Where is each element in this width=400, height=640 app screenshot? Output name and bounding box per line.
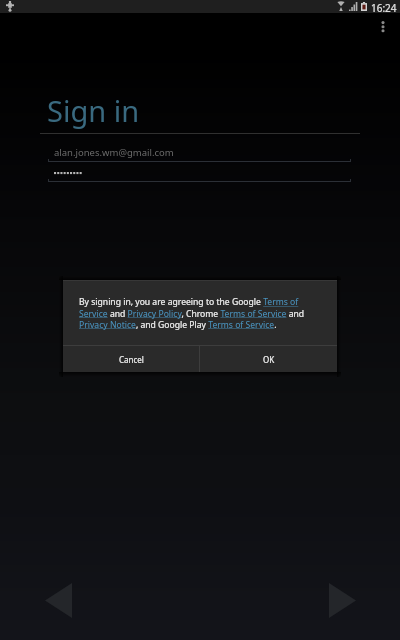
button[interactable]: Cancel xyxy=(63,346,199,372)
staticText: Sign in xyxy=(47,91,140,130)
staticText: OK xyxy=(263,354,275,365)
staticText: 16:24 xyxy=(371,1,397,14)
button[interactable]: Forward xyxy=(314,576,370,624)
button[interactable]: More options xyxy=(368,14,400,40)
staticText: alan.jones.wm@gmail.com xyxy=(54,146,174,159)
button[interactable]: Back xyxy=(30,576,86,624)
button[interactable]: OK xyxy=(200,346,337,372)
staticText: Cancel xyxy=(119,354,144,365)
staticText: By signing in, you are agreeing to the G… xyxy=(79,296,313,330)
